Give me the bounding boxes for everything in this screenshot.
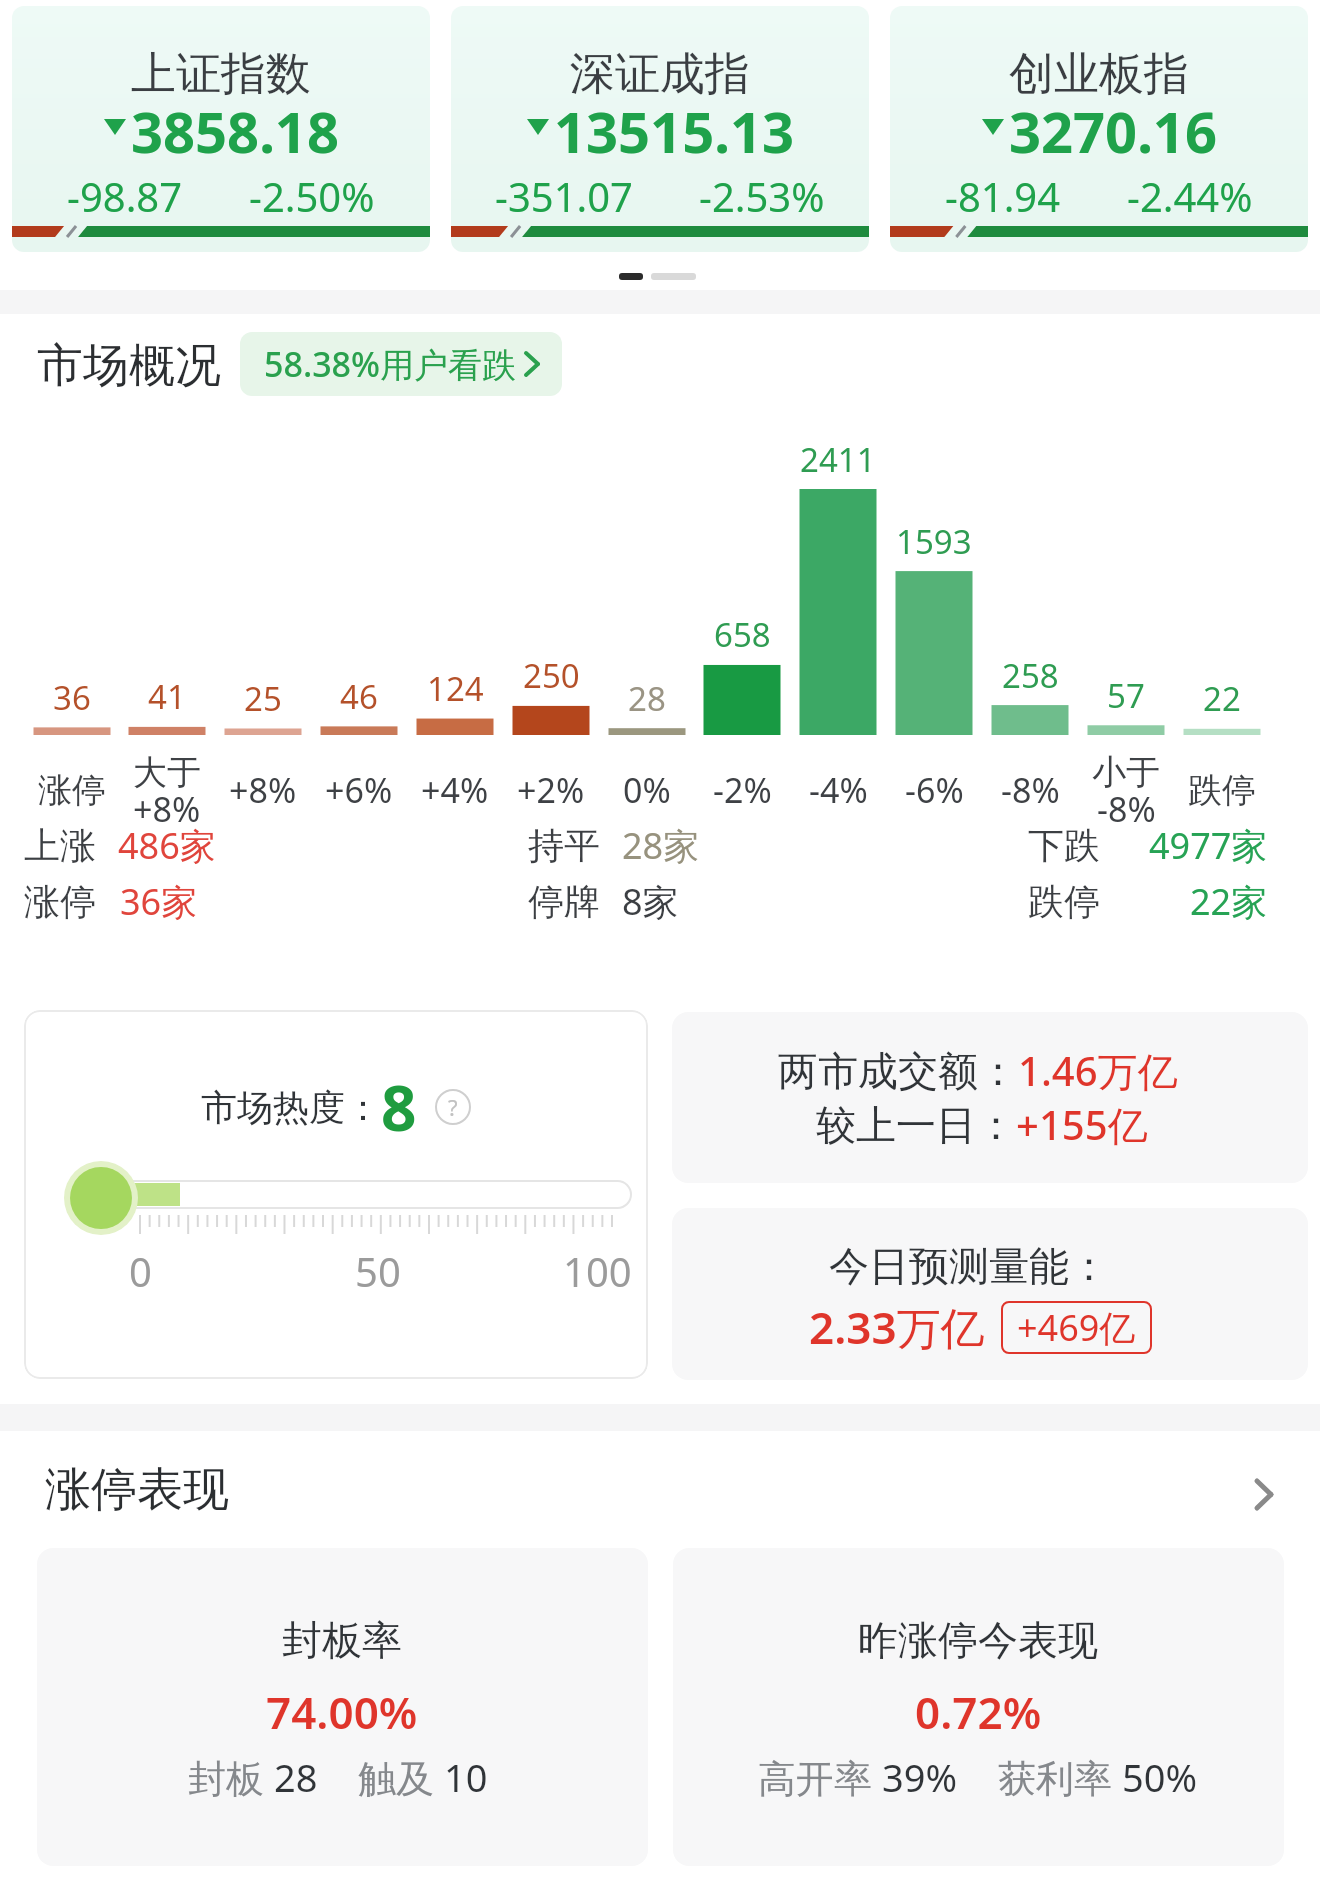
staticText: +8% [133, 786, 201, 832]
staticText: 大于 [133, 751, 201, 794]
staticText: 持平 [528, 823, 600, 868]
staticText: 8 [381, 1065, 417, 1149]
staticText: +8% [229, 767, 297, 813]
staticText: 50% [1122, 1751, 1198, 1803]
staticText: 高开率 [758, 1751, 882, 1803]
staticText: 22家 [1190, 877, 1268, 926]
button[interactable] [37, 1548, 648, 1866]
staticText: 41 [148, 674, 186, 719]
staticText: 486家 [118, 821, 216, 870]
staticText: 10 [444, 1751, 488, 1803]
staticText: 获利率 [998, 1751, 1122, 1803]
staticText: -2.53% [699, 169, 825, 215]
staticText: 25 [244, 676, 282, 721]
staticText: 36家 [120, 877, 198, 926]
staticText: 跌停 [1188, 769, 1256, 812]
staticText: -98.87 [67, 169, 183, 215]
staticText: 57 [1107, 673, 1145, 718]
button[interactable] [672, 1208, 1308, 1380]
staticText: 50 [355, 1244, 401, 1298]
button[interactable] [672, 1012, 1308, 1183]
staticText: 深证成指 [570, 46, 750, 98]
staticText: 昨涨停今表现 [858, 1615, 1098, 1665]
button[interactable]: 上证指数 [12, 6, 430, 252]
staticText: +469亿 [1017, 1303, 1136, 1352]
staticText: 今日预测量能： [829, 1241, 1109, 1291]
staticText: 258 [1002, 653, 1059, 698]
staticText: 250 [523, 653, 580, 698]
staticText: -6% [905, 767, 964, 813]
button[interactable]: 深证成指 [451, 6, 869, 252]
staticText: 触及 [358, 1751, 444, 1803]
staticText: +6% [325, 767, 393, 813]
staticText: 市场概况 [37, 337, 221, 395]
staticText: -4% [809, 767, 868, 813]
staticText: 涨停表现 [45, 1461, 229, 1519]
staticText: 28家 [622, 821, 700, 870]
staticText: 22 [1203, 676, 1241, 721]
staticText: 跌停 [1028, 879, 1100, 924]
button[interactable] [24, 1010, 648, 1379]
staticText: 市场热度： [201, 1085, 381, 1130]
staticText: 8家 [622, 877, 679, 926]
staticText: ? [448, 1092, 458, 1122]
staticText: 124 [427, 666, 484, 711]
staticText: -351.07 [495, 169, 633, 215]
staticText: +155亿 [1016, 1097, 1148, 1152]
staticText: -8% [1001, 767, 1060, 813]
staticText: +2% [517, 767, 585, 813]
staticText: 封板 [188, 1751, 274, 1803]
staticText: 3858.18 [131, 93, 339, 159]
staticText: 较上一日： [816, 1100, 1016, 1150]
staticText: 28 [274, 1751, 318, 1803]
staticText: 36 [53, 675, 91, 720]
staticText: 28 [628, 676, 666, 721]
staticText: 上证指数 [131, 46, 311, 98]
button[interactable] [673, 1548, 1284, 1866]
staticText: +4% [421, 767, 489, 813]
staticText: -8% [1097, 786, 1156, 832]
staticText: 74.00% [266, 1682, 418, 1742]
staticText: 46 [340, 674, 378, 719]
staticText: -2.44% [1127, 169, 1253, 215]
button[interactable]: 58.38%用户看跌 [240, 332, 562, 396]
staticText: 1593 [896, 519, 972, 564]
staticText: 4977家 [1149, 821, 1268, 870]
staticText: 创业板指 [1009, 46, 1189, 98]
button[interactable]: 创业板指 [890, 6, 1308, 252]
staticText: -81.94 [945, 169, 1061, 215]
staticText: 0% [623, 767, 671, 813]
staticText: 2.33万亿 [809, 1297, 985, 1357]
staticText: 小于 [1092, 751, 1160, 794]
button[interactable] [1255, 1479, 1273, 1510]
staticText: 0 [129, 1244, 152, 1298]
staticText: 0.72% [915, 1682, 1042, 1742]
staticText: 39% [882, 1751, 958, 1803]
staticText: 上涨 [24, 823, 96, 868]
staticText: 13515.13 [554, 93, 794, 159]
staticText: 100 [563, 1244, 632, 1298]
staticText: 1.46万亿 [1018, 1043, 1178, 1098]
staticText: 涨停 [38, 769, 106, 812]
staticText: 两市成交额： [778, 1046, 1018, 1096]
staticText: 58.38%用户看跌 [264, 341, 517, 387]
staticText: 封板率 [282, 1615, 402, 1665]
staticText: 停牌 [528, 879, 600, 924]
staticText: 658 [714, 612, 771, 657]
staticText: 涨停 [24, 879, 96, 924]
staticText: 下跌 [1028, 823, 1100, 868]
staticText: 3270.16 [1009, 93, 1217, 159]
staticText: 2411 [800, 437, 876, 482]
staticText: -2.50% [249, 169, 375, 215]
staticText: -2% [713, 767, 772, 813]
